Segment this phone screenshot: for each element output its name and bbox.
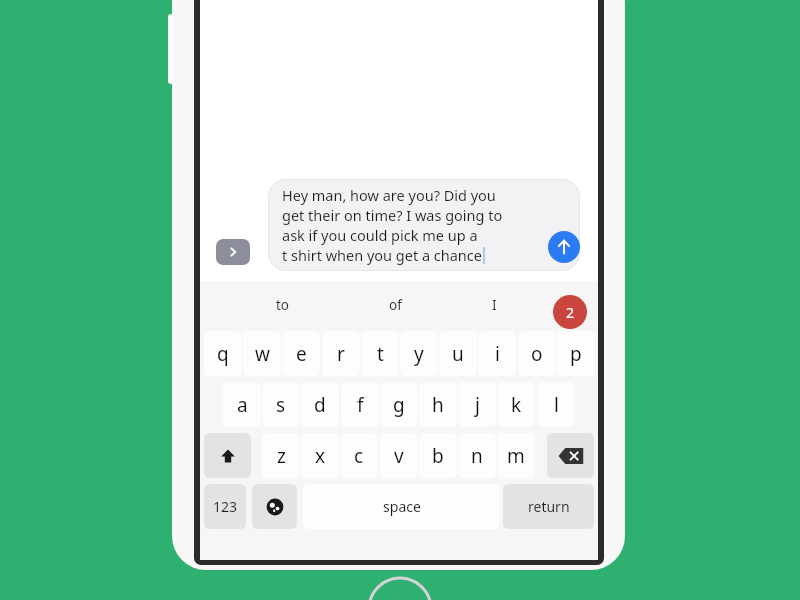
button[interactable]: d [301, 382, 339, 427]
staticText: j [475, 392, 480, 418]
staticText: g [393, 392, 405, 418]
staticText: e [296, 341, 307, 367]
staticText: t shirt when you get a chance [282, 245, 482, 265]
button[interactable]: s [262, 382, 300, 427]
staticText: d [314, 392, 326, 418]
staticText: l [554, 392, 559, 418]
staticText: 123 [213, 497, 238, 516]
staticText: f [357, 392, 364, 418]
staticText: c [354, 443, 364, 469]
button[interactable]: u [439, 331, 477, 376]
button[interactable]: t [361, 331, 399, 376]
button[interactable]: v [380, 433, 418, 478]
button[interactable]: to [228, 281, 338, 329]
staticText: a [237, 392, 248, 418]
staticText: v [394, 443, 404, 469]
button[interactable]: space [303, 484, 500, 529]
button[interactable]: I [452, 281, 537, 329]
button[interactable]: y [400, 331, 438, 376]
staticText: o [531, 341, 543, 367]
button[interactable]: 123 [204, 484, 246, 529]
staticText: z [277, 443, 286, 469]
staticText: Hey man, how are you? Did you [282, 185, 496, 205]
button[interactable]: r [322, 331, 360, 376]
staticText: t [377, 341, 384, 367]
button[interactable]: q [204, 331, 242, 376]
staticText: x [315, 443, 326, 469]
button[interactable]: Switch keyboard [252, 484, 297, 529]
button[interactable]: a [223, 382, 261, 427]
button[interactable]: l [537, 382, 575, 427]
staticText: k [511, 392, 522, 418]
button[interactable]: Expand [216, 239, 250, 265]
button[interactable]: Send [548, 231, 580, 263]
button[interactable]: w [243, 331, 281, 376]
button[interactable]: m [497, 433, 535, 478]
staticText: m [507, 443, 525, 469]
button[interactable]: i [478, 331, 516, 376]
button[interactable]: e [282, 331, 320, 376]
button[interactable]: 2 suggestions [553, 295, 587, 329]
staticText: b [432, 443, 444, 469]
staticText: q [217, 341, 229, 367]
staticText: u [452, 341, 464, 367]
button[interactable]: c [340, 433, 378, 478]
button[interactable]: b [419, 433, 457, 478]
button[interactable]: z [262, 433, 300, 478]
staticText: ask if you could pick me up a [282, 225, 478, 245]
button[interactable]: Backspace [547, 433, 594, 478]
button[interactable]: j [458, 382, 496, 427]
staticText: s [276, 392, 286, 418]
staticText: to [276, 296, 290, 314]
button[interactable]: Shift [204, 433, 251, 478]
button[interactable]: o [518, 331, 556, 376]
button[interactable]: p [557, 331, 595, 376]
button[interactable]: g [380, 382, 418, 427]
button[interactable]: h [419, 382, 457, 427]
staticText: I [492, 296, 497, 314]
staticText: of [389, 296, 402, 314]
staticText: w [255, 341, 270, 367]
staticText: space [383, 497, 421, 516]
staticText: h [432, 392, 444, 418]
button[interactable]: k [497, 382, 535, 427]
staticText: p [570, 341, 582, 367]
staticText: 2 [566, 303, 575, 322]
staticText: n [471, 443, 483, 469]
staticText: r [337, 341, 345, 367]
staticText: i [495, 341, 500, 367]
button[interactable]: f [341, 382, 379, 427]
staticText: return [528, 497, 570, 516]
button[interactable]: x [301, 433, 339, 478]
button[interactable]: return [503, 484, 594, 529]
button[interactable]: of [340, 281, 450, 329]
button[interactable]: Hey man, how are you? Did you [268, 179, 580, 271]
button[interactable]: n [458, 433, 496, 478]
button[interactable]: Home [367, 576, 433, 600]
staticText: y [414, 341, 424, 367]
staticText: get their on time? I was going to [282, 205, 503, 225]
